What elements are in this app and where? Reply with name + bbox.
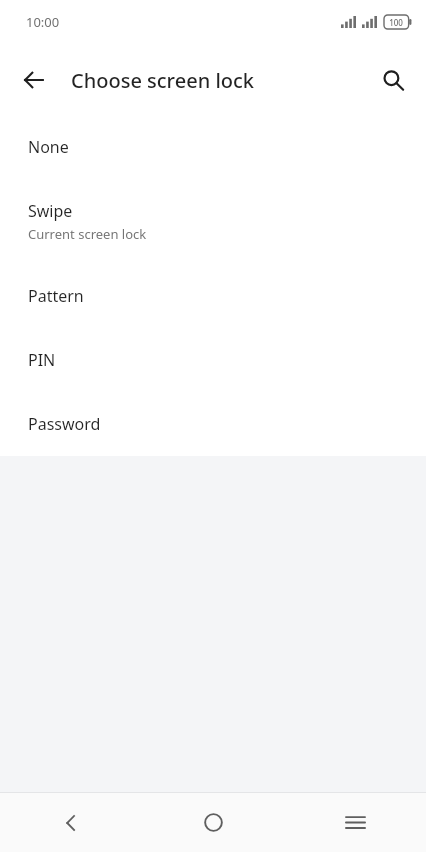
staticText: 10:00 [26, 13, 60, 31]
button[interactable]: Swipe [0, 179, 426, 264]
button[interactable]: Search [369, 56, 417, 104]
button[interactable]: Back [0, 793, 142, 852]
button[interactable]: Recent apps [284, 793, 426, 852]
staticText: Choose screen lock [71, 67, 254, 94]
staticText: Swipe [28, 200, 73, 222]
staticText: None [28, 136, 69, 158]
button[interactable]: Back [10, 56, 58, 104]
button[interactable]: PIN [0, 328, 426, 392]
button[interactable]: Home [142, 793, 284, 852]
staticText: Pattern [28, 285, 84, 307]
button[interactable]: None [0, 116, 426, 179]
staticText: PIN [28, 349, 56, 371]
button[interactable]: Pattern [0, 264, 426, 328]
staticText: Password [28, 413, 101, 435]
staticText: Current screen lock [28, 225, 147, 243]
staticText: 100 [384, 17, 408, 28]
button[interactable]: Password [0, 392, 426, 456]
